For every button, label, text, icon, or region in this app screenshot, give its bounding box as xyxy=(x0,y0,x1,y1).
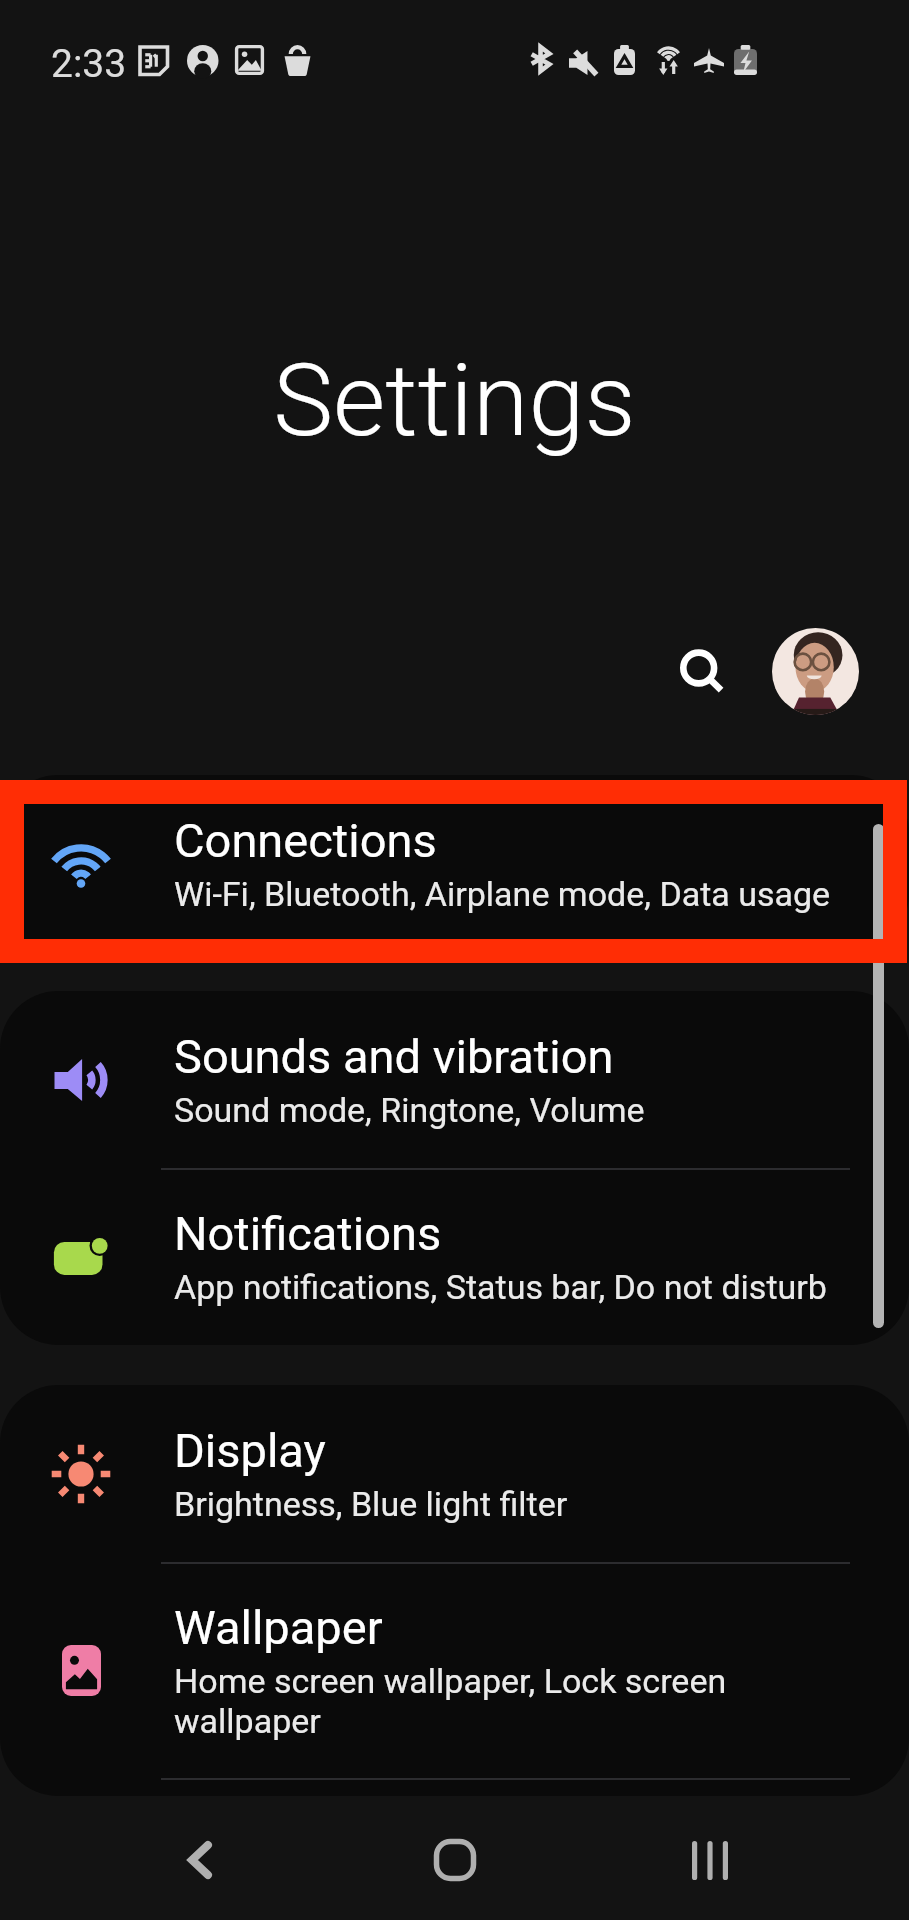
button[interactable]: Wallpaper xyxy=(0,1562,909,1778)
staticText: App notifications, Status bar, Do not di… xyxy=(174,1267,827,1307)
staticText: Notifications xyxy=(174,1206,442,1261)
button[interactable]: Recent apps xyxy=(640,1796,780,1920)
staticText: Display xyxy=(174,1423,326,1478)
button[interactable]: Notifications xyxy=(0,1168,909,1345)
staticText: Settings xyxy=(0,341,909,459)
staticText: Sounds and vibration xyxy=(174,1029,614,1084)
button[interactable]: Connections xyxy=(0,775,909,952)
button[interactable]: Home xyxy=(385,1796,525,1920)
button[interactable]: Back xyxy=(130,1796,270,1920)
button[interactable]: Account xyxy=(772,628,859,715)
button[interactable]: Search xyxy=(657,626,745,714)
staticText: Wallpaper xyxy=(174,1600,383,1655)
staticText: Brightness, Blue light filter xyxy=(174,1484,568,1524)
staticText: Home screen wallpaper, Lock screen wallp… xyxy=(174,1661,846,1742)
staticText: 2:33 xyxy=(51,41,127,87)
button[interactable]: Display xyxy=(0,1385,909,1562)
staticText: Connections xyxy=(174,813,437,868)
button[interactable]: Sounds and vibration xyxy=(0,991,909,1168)
staticText: Sound mode, Ringtone, Volume xyxy=(174,1090,645,1130)
staticText: Wi-Fi, Bluetooth, Airplane mode, Data us… xyxy=(174,874,831,914)
